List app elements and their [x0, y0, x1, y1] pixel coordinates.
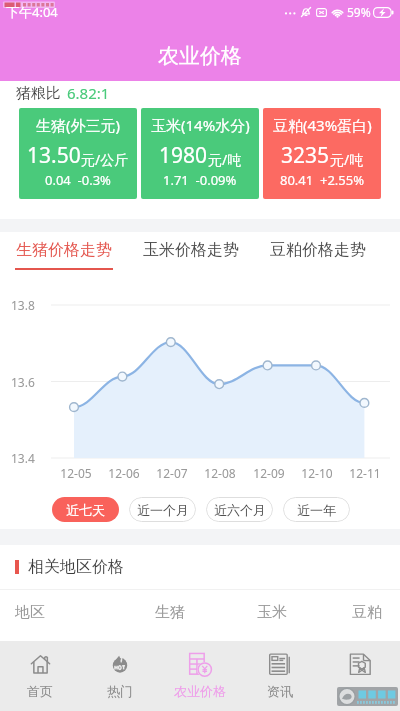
staticText: 玉米: [257, 603, 287, 622]
staticText: 元/吨: [330, 150, 364, 169]
staticText: 玉米价格走势: [143, 240, 239, 260]
staticText: 12-10: [301, 465, 333, 481]
button[interactable]: 首页: [0, 641, 80, 711]
staticText: 80.41 +2.55%: [280, 171, 365, 189]
button[interactable]: 资讯: [240, 641, 320, 711]
staticText: 元/吨: [208, 150, 242, 169]
staticText: 3235: [281, 141, 330, 170]
button[interactable]: 豆粕(43%蛋白): [263, 108, 381, 199]
button[interactable]: 近七天: [52, 497, 119, 522]
staticText: 豆粕价格走势: [270, 240, 366, 260]
staticText: 元/公斤: [81, 150, 129, 169]
staticText: 13.6: [11, 374, 35, 390]
staticText: 1980: [159, 141, 208, 170]
button[interactable]: 玉米(14%水分): [141, 108, 259, 199]
staticText: 玉米(14%水分): [151, 115, 250, 135]
staticText: 6.82:1: [67, 83, 110, 103]
button[interactable]: 证书: [320, 641, 400, 711]
staticText: 资讯: [267, 683, 293, 699]
staticText: 近七天: [66, 502, 105, 518]
staticText: 豆粕(43%蛋白): [273, 115, 372, 135]
button[interactable]: 生猪(外三元): [19, 108, 137, 199]
staticText: 12-08: [204, 465, 236, 481]
staticText: 生猪: [155, 603, 185, 622]
button[interactable]: 玉米价格走势: [127, 232, 254, 270]
staticText: 13.50: [27, 141, 81, 170]
staticText: 近一个月: [137, 502, 189, 518]
staticText: 12-06: [108, 465, 140, 481]
staticText: 农业价格: [174, 683, 226, 699]
staticText: 59%: [347, 4, 371, 20]
button[interactable]: 生猪价格走势: [0, 232, 127, 270]
staticText: 豆粕: [352, 603, 382, 622]
button[interactable]: 近一年: [283, 497, 350, 522]
staticText: 13.8: [11, 297, 35, 313]
staticText: 12-05: [60, 465, 92, 481]
staticText: 热门: [107, 683, 133, 699]
button[interactable]: 豆粕价格走势: [254, 232, 381, 270]
staticText: 12-11: [349, 465, 381, 481]
staticText: 13.4: [11, 450, 35, 466]
staticText: 农业价格: [158, 43, 242, 69]
button[interactable]: 近六个月: [206, 497, 273, 522]
staticText: 1.71 -0.09%: [163, 171, 237, 189]
staticText: 0.04 -0.3%: [45, 171, 111, 189]
button[interactable]: 近一个月: [129, 497, 196, 522]
staticText: 首页: [27, 683, 53, 699]
staticText: 生猪(外三元): [36, 115, 121, 135]
staticText: 猪粮比: [16, 84, 61, 103]
button[interactable]: 热门: [80, 641, 160, 711]
staticText: 12-09: [253, 465, 285, 481]
staticText: 12-07: [156, 465, 188, 481]
staticText: 近一年: [297, 502, 336, 518]
staticText: 生猪价格走势: [16, 240, 112, 260]
staticText: 地区: [15, 603, 45, 622]
staticText: 下午4:04: [6, 3, 58, 21]
button[interactable]: 农业价格: [160, 641, 240, 711]
staticText: 近六个月: [214, 502, 266, 518]
staticText: 相关地区价格: [28, 557, 124, 577]
